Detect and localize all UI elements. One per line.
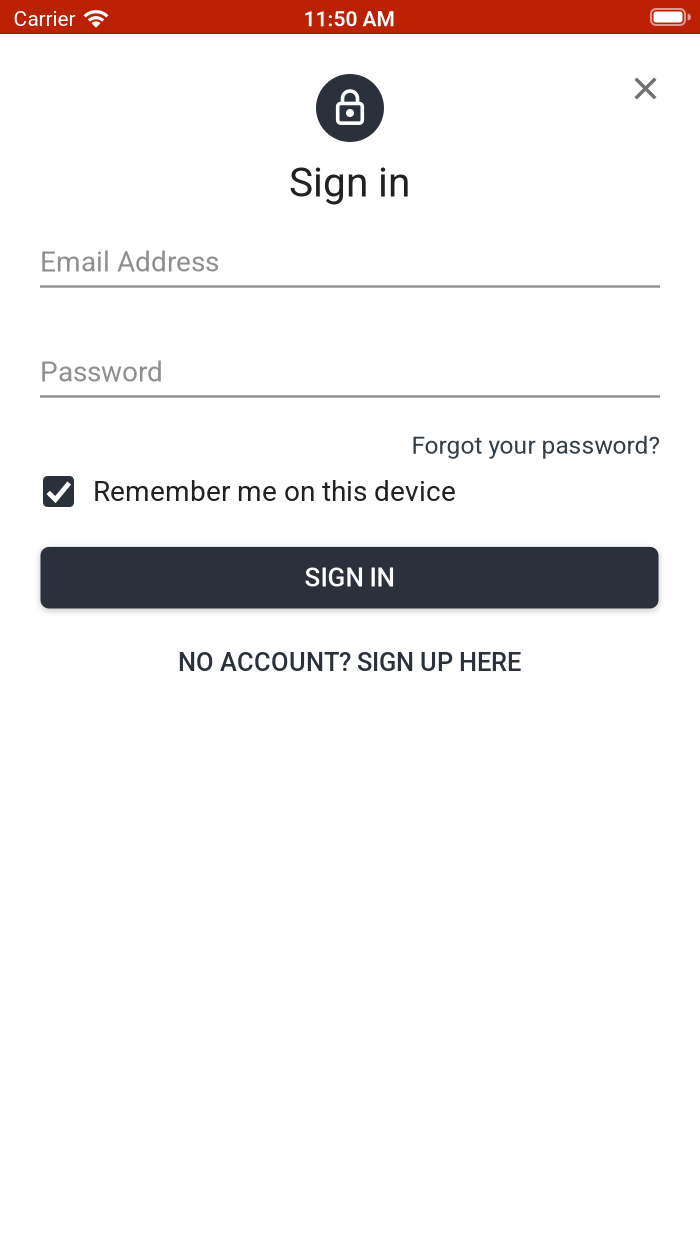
staticText: Forgot your password? [411, 431, 660, 460]
button[interactable]: SIGN IN [40, 547, 658, 608]
button[interactable]: Forgot your password? [411, 431, 660, 460]
staticText: Remember me on this device [93, 475, 456, 508]
staticText: Email Address [40, 246, 219, 278]
button[interactable]: Remember me on this device [43, 475, 456, 508]
staticText: SIGN IN [304, 562, 394, 593]
staticText: Sign in [289, 159, 410, 206]
button[interactable]: Close [622, 65, 668, 111]
staticText: NO ACCOUNT? SIGN UP HERE [178, 647, 521, 677]
staticText: Password [40, 356, 163, 388]
button[interactable]: Email Address [40, 240, 660, 300]
staticText: Carrier [13, 7, 75, 31]
button[interactable]: Password [40, 350, 660, 410]
button[interactable]: NO ACCOUNT? SIGN UP HERE [178, 647, 521, 677]
staticText: 11:50 AM [303, 7, 394, 31]
